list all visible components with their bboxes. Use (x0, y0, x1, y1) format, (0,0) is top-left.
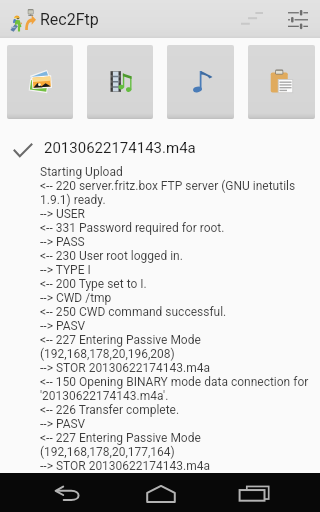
staticText: --> CWD /tmp (40, 291, 112, 305)
staticText: --> USER (40, 207, 86, 221)
staticText: <-- 331 Password required for root. (40, 221, 225, 235)
button[interactable]: Audio (167, 45, 234, 119)
staticText: --> PASS (40, 235, 85, 249)
button[interactable]: Back (20, 473, 114, 512)
button[interactable]: Home (114, 473, 207, 512)
staticText: <-- 227 Entering Passive Mode (40, 431, 201, 445)
staticText: 20130622174143.m4a (44, 139, 196, 157)
staticText: <-- 150 Opening BINARY mode data connect… (40, 375, 309, 389)
staticText: --> PASV (40, 417, 86, 431)
staticText: 1.9.1) ready. (40, 193, 106, 207)
staticText: --> STOR 20130622174143.m4a (40, 361, 211, 375)
staticText: --> TYPE I (40, 263, 91, 277)
staticText: (192,168,178,20,196,208) (40, 347, 175, 361)
staticText: <-- 220 server.fritz.box FTP server (GNU… (40, 179, 296, 193)
staticText: <-- 250 CWD command successful. (40, 305, 227, 319)
button[interactable]: Recent apps (207, 473, 300, 512)
button[interactable]: Filter (234, 0, 278, 38)
staticText: <-- 200 Type set to I. (40, 277, 147, 291)
staticText: <-- 227 Entering Passive Mode (40, 333, 201, 347)
staticText: '20130622174143.m4a'. (40, 389, 169, 403)
button[interactable]: 20130622174143.m4a (0, 134, 320, 165)
staticText: (192,168,178,20,177,164) (40, 445, 175, 459)
staticText: <-- 226 Transfer complete. (40, 403, 180, 417)
staticText: Starting Upload (40, 165, 123, 179)
button[interactable]: Settings (278, 0, 318, 38)
staticText: Rec2Ftp (40, 10, 99, 29)
staticText: --> STOR 20130622174143.m4a (40, 459, 211, 473)
staticText: <-- 230 User root logged in. (40, 249, 183, 263)
button[interactable]: Pictures (7, 45, 73, 119)
button[interactable]: Videos (87, 45, 153, 119)
staticText: --> PASV (40, 319, 86, 333)
button[interactable]: Notes (248, 45, 315, 119)
